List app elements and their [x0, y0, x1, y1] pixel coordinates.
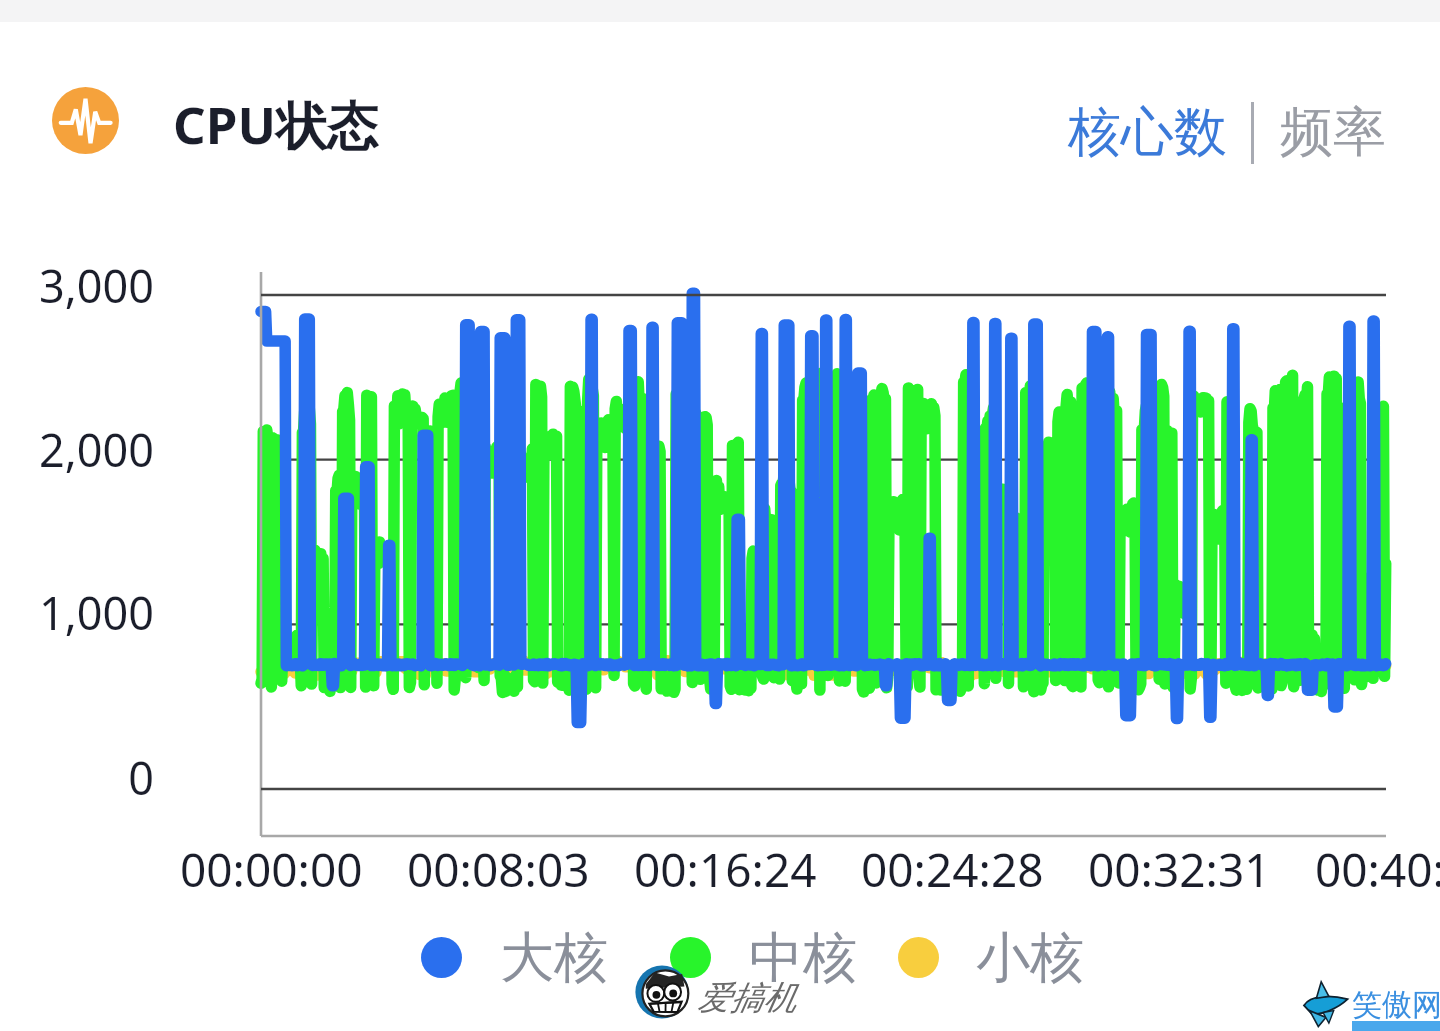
button[interactable]: 中核: [670, 924, 861, 990]
staticText: 中核: [749, 924, 857, 990]
button[interactable]: CPU status: [52, 87, 119, 154]
staticText: 大核: [500, 924, 608, 990]
staticText: 笑傲网: [1352, 986, 1440, 1024]
staticText: 00:08:03: [407, 838, 590, 901]
staticText: 1,000: [0, 582, 154, 643]
staticText: 00:00:00: [180, 838, 363, 901]
button[interactable]: 核心数: [1068, 95, 1227, 170]
staticText: CPU状态: [173, 89, 378, 159]
staticText: 核心数: [1068, 99, 1227, 166]
button[interactable]: 频率: [1280, 95, 1386, 170]
button[interactable]: 大核: [421, 924, 612, 990]
button[interactable]: 小核: [898, 924, 1088, 990]
staticText: 3,000: [0, 255, 154, 316]
staticText: 0: [0, 747, 154, 808]
staticText: 00:24:28: [861, 838, 1044, 901]
staticText: 00:32:31: [1088, 838, 1271, 901]
staticText: 频率: [1280, 99, 1386, 166]
staticText: 2,000: [0, 419, 154, 480]
staticText: 00:16:24: [634, 838, 817, 901]
staticText: 爱搞机: [697, 977, 796, 1019]
staticText: 小核: [976, 924, 1084, 990]
staticText: 00:40:3: [1315, 838, 1440, 901]
